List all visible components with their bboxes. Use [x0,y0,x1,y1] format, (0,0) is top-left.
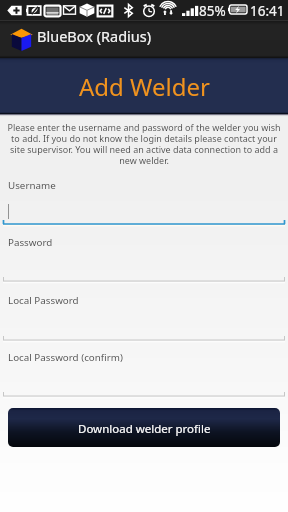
staticText: Local Password [8,294,79,307]
button[interactable]: Download welder profile [8,408,280,447]
staticText: Password [8,236,53,249]
staticText: Username [8,179,56,192]
staticText: Add Welder [79,70,210,103]
button[interactable]: Username [0,179,288,234]
button[interactable]: Password [0,236,288,291]
staticText: 16:41 [250,2,285,20]
staticText: Download welder profile [78,421,211,437]
staticText: BlueBox (Radius) [37,26,152,46]
other: BlueBox logo [10,28,33,51]
button[interactable]: Local Password [0,294,288,350]
button[interactable]: BlueBox logo [0,20,288,58]
staticText: 85% [199,2,226,20]
button[interactable]: Local Password (confirm) [0,351,288,406]
staticText: Please enter the username and password o… [6,121,282,166]
staticText: Local Password (confirm) [8,351,123,364]
